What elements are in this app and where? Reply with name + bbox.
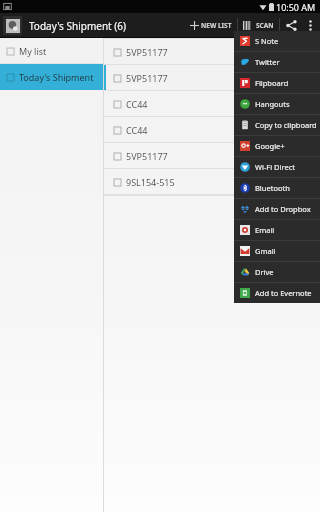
staticText: Hangouts [255,99,290,109]
button[interactable]: Add to Evernote [234,283,320,303]
button[interactable]: More options [302,13,318,38]
staticText: Today's Shipment (6) [29,19,127,33]
button[interactable]: My list [0,38,104,64]
staticText: Email [255,225,275,235]
button[interactable]: S Note [234,31,320,51]
button[interactable]: Flipboard [234,73,320,93]
staticText: Wi-Fi Direct [255,162,295,172]
staticText: Flipboard [255,78,289,88]
button[interactable]: Today's Shipment [0,64,104,90]
staticText: 5VP51177 [126,72,168,84]
button[interactable]: CC44 [104,91,320,117]
staticText: CC44 [126,124,148,136]
button[interactable]: Gmail [234,241,320,261]
button[interactable]: Add to Dropbox [234,199,320,219]
staticText: Drive [255,267,274,277]
button[interactable]: Share [280,13,302,38]
staticText: 10:50 AM [276,1,316,13]
button[interactable]: 5VP51177 [104,39,320,65]
staticText: Copy to clipboard [255,120,317,130]
button[interactable]: Drive [234,262,320,282]
button[interactable]: App icon [3,16,22,35]
button[interactable]: 9SL154-515 [104,169,320,195]
staticText: Gmail [255,246,276,256]
button[interactable]: NEW LIST [185,13,237,38]
button[interactable]: Bluetooth [234,178,320,198]
staticText: Add to Dropbox [255,204,311,214]
button[interactable]: Wi-Fi Direct [234,157,320,177]
staticText: Bluetooth [255,183,290,193]
staticText: Twitter [255,57,280,67]
staticText: 5VP51177 [126,150,168,162]
button[interactable]: Google+ [234,136,320,156]
staticText: Add to Evernote [255,288,312,298]
staticText: SCAN [256,21,274,30]
button[interactable]: 5VP51177 [104,143,320,169]
staticText: 5VP51177 [126,46,168,58]
button[interactable]: CC44 [104,117,320,143]
button[interactable]: 5VP51177 [104,65,320,91]
button[interactable]: Copy to clipboard [234,115,320,135]
staticText: S Note [255,36,279,46]
staticText: 9SL154-515 [126,176,175,188]
staticText: CC44 [126,98,148,110]
staticText: Today's Shipment [19,71,94,83]
button[interactable]: Email [234,220,320,240]
button[interactable]: SCAN [238,13,279,38]
staticText: Google+ [255,141,285,151]
staticText: My list [19,45,47,57]
staticText: NEW LIST [201,21,232,30]
button[interactable]: Hangouts [234,94,320,114]
button[interactable]: Twitter [234,52,320,72]
